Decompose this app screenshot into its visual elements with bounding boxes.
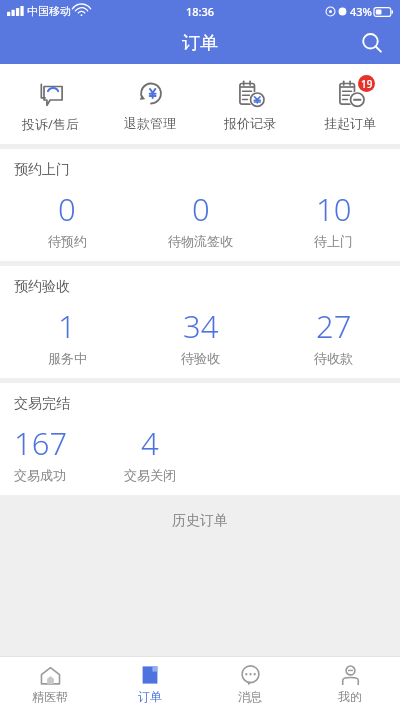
staticText: 0 [192,188,210,230]
button[interactable]: 0 [134,188,267,249]
staticText: 待物流签收 [168,233,233,249]
staticText: 我的 [338,689,362,704]
staticText: 中国移动 [27,4,71,18]
button[interactable]: 精医帮 [0,657,100,710]
staticText: 历史订单 [172,512,228,530]
staticText: 退款管理 [124,115,176,131]
staticText: 待上门 [314,233,353,249]
staticText: 18:36 [186,4,215,19]
staticText: 待验收 [181,350,220,366]
staticText: 投诉/售后 [22,115,79,133]
staticText: 精医帮 [32,689,68,704]
staticText: 4 [141,422,159,464]
staticText: 交易关闭 [124,467,176,483]
staticText: 挂起订单 [324,115,376,131]
staticText: 订单 [138,689,162,704]
button[interactable]: 10 [267,188,400,249]
staticText: 报价记录 [224,115,276,131]
button[interactable]: 退款管理 [100,74,200,133]
button[interactable]: 我的 [300,657,400,710]
button[interactable]: 167 [14,422,100,483]
button[interactable]: 0 [0,188,134,249]
staticText: 0 [58,188,76,230]
button[interactable]: 投诉/售后 [0,74,100,135]
staticText: 消息 [238,689,262,704]
staticText: 待收款 [314,350,353,366]
button[interactable]: Search [352,23,392,63]
staticText: 订单 [182,32,218,55]
button[interactable]: 历史订单 [0,495,400,547]
staticText: 预约上门 [14,161,70,179]
staticText: 服务中 [48,350,87,366]
button[interactable]: 1 [0,305,134,366]
button[interactable]: 订单 [100,657,200,710]
staticText: 19 [361,77,373,91]
staticText: 43% [350,4,372,19]
staticText: 27 [316,305,352,347]
staticText: 交易成功 [14,467,66,483]
staticText: 1 [58,305,76,347]
staticText: 10 [316,188,352,230]
staticText: 交易完结 [14,395,70,413]
staticText: 预约验收 [14,278,70,296]
button[interactable]: 4 [100,422,200,483]
button[interactable]: 报价记录 [200,74,300,133]
button[interactable]: 19 [300,74,400,133]
staticText: 167 [14,422,68,464]
button[interactable]: 34 [134,305,267,366]
staticText: 待预约 [48,233,87,249]
staticText: 34 [183,305,219,347]
button[interactable]: 27 [267,305,400,366]
button[interactable]: 消息 [200,657,300,710]
